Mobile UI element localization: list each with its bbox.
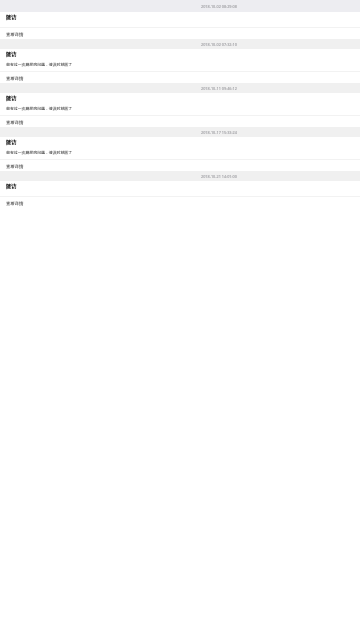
staticText: 随访 bbox=[6, 139, 16, 145]
staticText: 您有过一次糖尿病问题，请及时就医了 bbox=[6, 150, 73, 155]
button[interactable]: 查看详情 bbox=[0, 199, 360, 207]
button[interactable]: 随访 bbox=[0, 12, 360, 39]
staticText: 查看详情 bbox=[6, 32, 24, 37]
button[interactable]: 随访 bbox=[0, 181, 360, 208]
button[interactable]: 查看详情 bbox=[0, 30, 360, 38]
button[interactable]: 查看详情 bbox=[0, 74, 360, 82]
staticText: 您有过一次糖尿病问题，请及时就医了 bbox=[6, 106, 73, 111]
button[interactable]: 随访 bbox=[0, 93, 360, 127]
button[interactable]: 随访 bbox=[0, 49, 360, 83]
staticText: 2018-10-21 14:01:00 bbox=[201, 174, 237, 179]
staticText: 随访 bbox=[6, 95, 16, 101]
staticText: 随访 bbox=[6, 183, 16, 189]
button[interactable]: 随访 bbox=[0, 137, 360, 171]
staticText: 您有过一次糖尿病问题，请及时就医了 bbox=[6, 62, 73, 67]
staticText: 2018-10-17 15:33:24 bbox=[201, 130, 237, 135]
staticText: 2018-10-02 08:29:08 bbox=[201, 4, 237, 9]
staticText: 2018-10-02 07:32:10 bbox=[201, 42, 237, 47]
staticText: 查看详情 bbox=[6, 76, 24, 81]
staticText: 随访 bbox=[6, 51, 16, 57]
button[interactable]: 查看详情 bbox=[0, 162, 360, 170]
staticText: 随访 bbox=[6, 14, 16, 20]
staticText: 查看详情 bbox=[6, 201, 24, 206]
button[interactable]: 查看详情 bbox=[0, 118, 360, 126]
staticText: 2018-10-11 09:46:12 bbox=[201, 86, 237, 91]
staticText: 查看详情 bbox=[6, 120, 24, 125]
staticText: 查看详情 bbox=[6, 164, 24, 169]
